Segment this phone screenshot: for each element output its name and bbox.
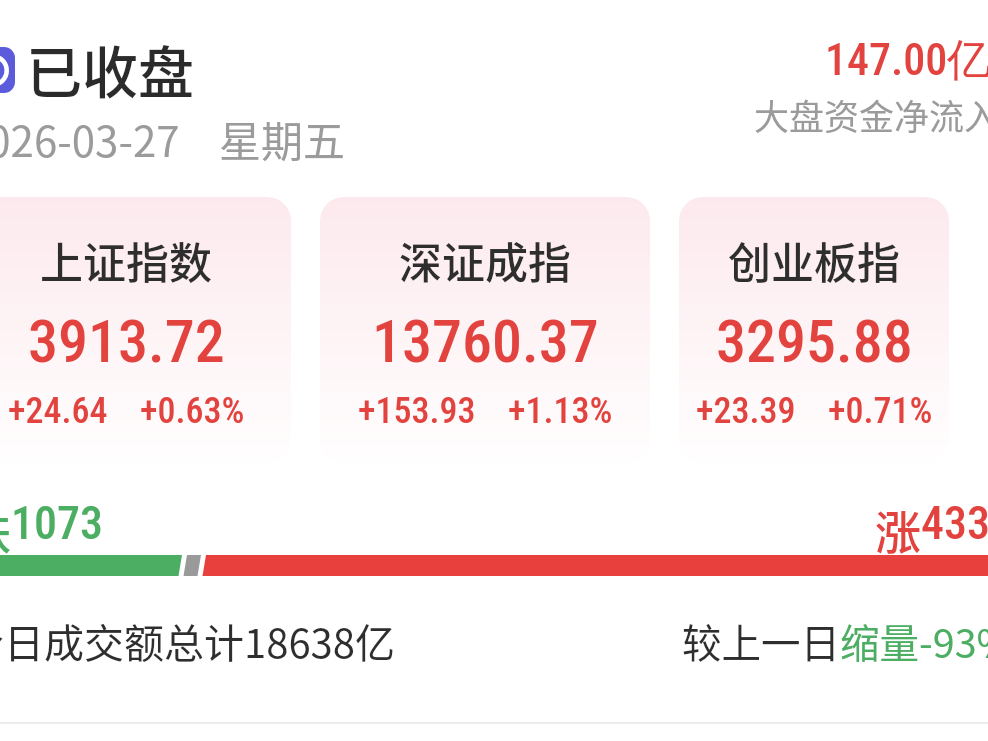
staticText: +0.63% bbox=[140, 390, 245, 432]
staticText: 3295.88 bbox=[716, 306, 913, 376]
staticText: +24.64 bbox=[8, 390, 108, 432]
button[interactable]: 创业板指 bbox=[679, 197, 949, 463]
staticText: 涨 bbox=[875, 496, 921, 563]
staticText: +1.13% bbox=[508, 390, 613, 432]
button[interactable]: 深证成指 bbox=[320, 197, 650, 463]
staticText: +0.71% bbox=[828, 390, 933, 432]
staticText: +153.93 bbox=[358, 390, 476, 432]
staticText: 已收盘 bbox=[26, 28, 194, 109]
staticText: 大盘资金净流入 bbox=[754, 89, 988, 140]
staticText: 2026-03-27 bbox=[0, 108, 180, 169]
staticText: 13760.37 bbox=[372, 306, 599, 376]
staticText: 147.00亿 bbox=[825, 33, 988, 88]
staticText: 跌 bbox=[0, 496, 11, 563]
button[interactable]: Market closed status bbox=[0, 47, 15, 93]
staticText: 4331 bbox=[921, 496, 988, 550]
staticText: 今日成交额总计18638亿 bbox=[0, 612, 395, 670]
staticText: 较上一日 bbox=[682, 612, 840, 669]
staticText: 3913.72 bbox=[28, 306, 225, 376]
staticText: 缩量-93% bbox=[840, 612, 988, 669]
staticText: 上证指数 bbox=[40, 229, 212, 291]
staticText: 星期五 bbox=[219, 108, 346, 169]
staticText: 创业板指 bbox=[728, 229, 900, 291]
staticText: 1073 bbox=[11, 496, 103, 550]
button[interactable]: 上证指数 bbox=[0, 197, 291, 463]
staticText: 深证成指 bbox=[399, 229, 571, 291]
staticText: +23.39 bbox=[696, 390, 796, 432]
